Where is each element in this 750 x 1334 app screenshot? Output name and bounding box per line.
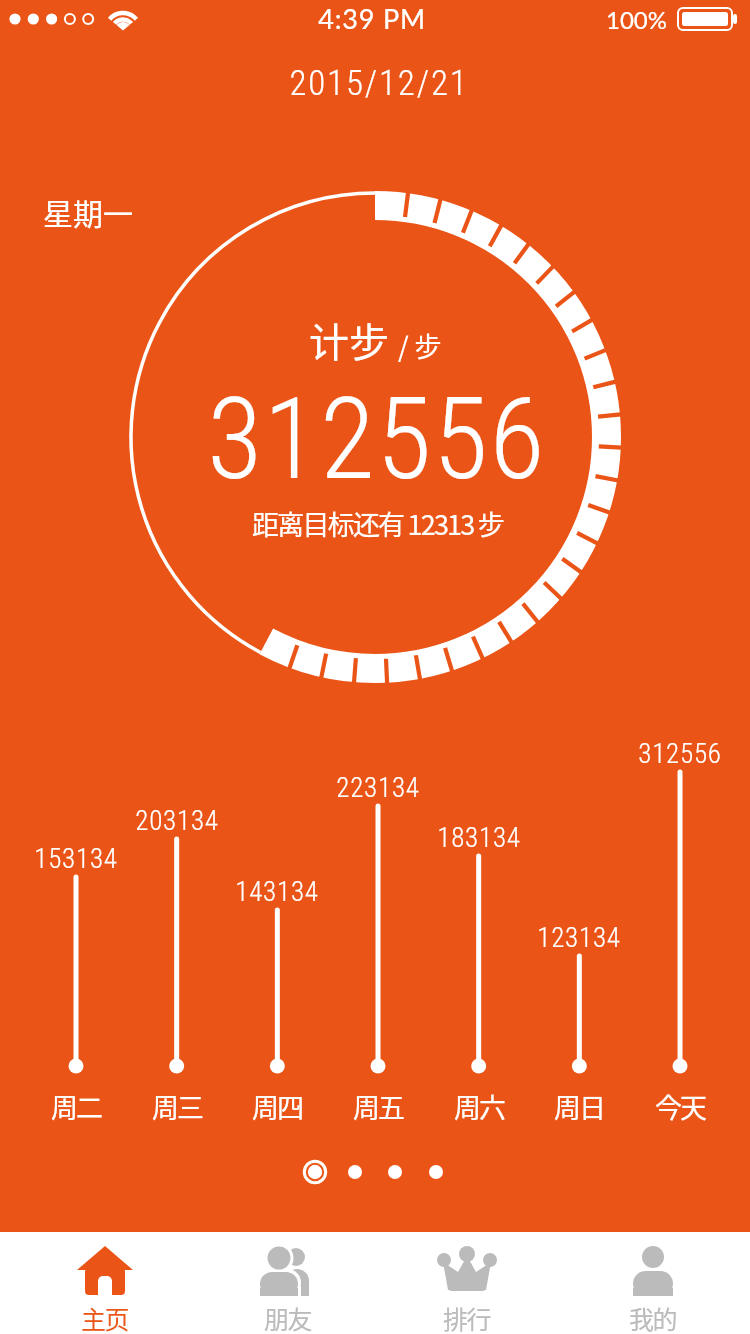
staticText: 排行: [443, 1300, 491, 1334]
staticText: 主页: [81, 1300, 129, 1334]
staticText: 我的: [629, 1300, 677, 1334]
staticText: 312556: [207, 373, 546, 505]
staticText: 100%: [606, 5, 667, 34]
staticText: 153134: [34, 843, 118, 875]
button[interactable]: 我的: [578, 1232, 728, 1334]
staticText: 朋友: [264, 1300, 312, 1334]
staticText: 计步 / 步: [309, 311, 442, 369]
staticText: 周日: [554, 1087, 604, 1126]
staticText: 距离目标还有 12313 步: [252, 504, 503, 543]
staticText: 周六: [454, 1087, 504, 1126]
staticText: 2015/12/21: [289, 63, 469, 104]
staticText: 周二: [51, 1087, 101, 1126]
staticText: 143134: [235, 876, 319, 908]
staticText: 4:39 PM: [318, 2, 426, 34]
staticText: 123134: [537, 922, 621, 954]
staticText: 周五: [353, 1087, 403, 1126]
button[interactable]: 朋友: [213, 1232, 363, 1334]
staticText: 星期一: [43, 190, 133, 233]
staticText: 203134: [135, 805, 219, 837]
button[interactable]: 主页: [30, 1232, 180, 1334]
staticText: 今天: [655, 1087, 705, 1126]
staticText: 223134: [336, 772, 420, 804]
staticText: 周四: [252, 1087, 302, 1126]
staticText: 312556: [638, 738, 722, 770]
staticText: 周三: [152, 1087, 202, 1126]
button[interactable]: 排行: [392, 1232, 542, 1334]
staticText: 183134: [437, 822, 521, 854]
